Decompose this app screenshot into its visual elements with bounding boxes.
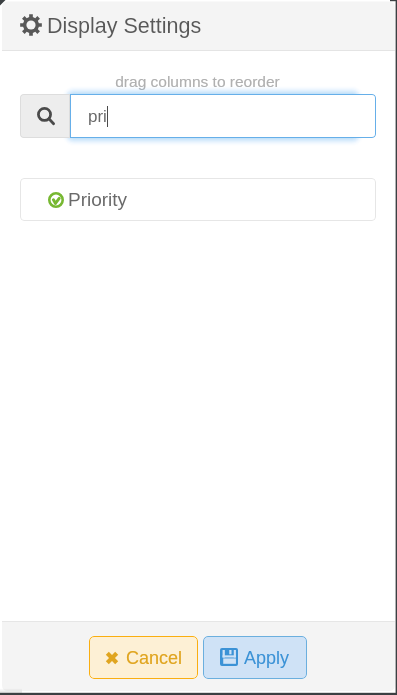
staticText: Apply: [244, 648, 290, 668]
button[interactable]: Search: [20, 94, 70, 138]
staticText: Display Settings: [47, 14, 202, 38]
button[interactable]: Priority: [20, 178, 376, 221]
staticText: drag columns to reorder: [0, 73, 395, 90]
staticText: Priority: [68, 189, 128, 210]
staticText: pri: [88, 107, 107, 126]
staticText: Cancel: [126, 648, 183, 668]
button[interactable]: pri: [70, 94, 376, 138]
button[interactable]: Cancel: [89, 636, 198, 679]
button[interactable]: Apply: [203, 636, 307, 679]
